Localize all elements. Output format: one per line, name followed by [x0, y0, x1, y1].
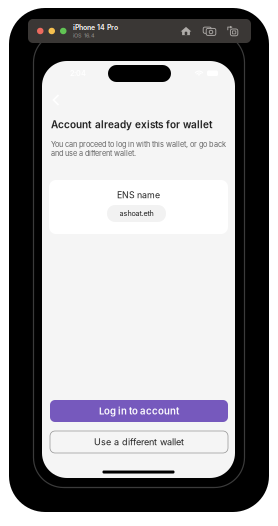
staticText: ashoat.eth [119, 209, 153, 218]
button[interactable]: Log in to account [50, 400, 228, 422]
staticText: Use a different wallet [94, 436, 184, 447]
staticText: Log in to account [99, 405, 179, 417]
staticText: Account already exists for wallet [51, 118, 213, 131]
button[interactable]: Use a different wallet [50, 431, 228, 453]
button[interactable]: Home [179, 21, 192, 41]
staticText: ENS name [117, 190, 160, 200]
staticText: 2:04 [70, 69, 86, 78]
staticText: iOS 16.4 [73, 32, 95, 39]
staticText: iPhone 14 Pro [73, 23, 118, 32]
button[interactable]: Screenshot [203, 21, 216, 41]
staticText: You can proceed to log in with this wall… [51, 140, 226, 158]
button[interactable]: Record screen [226, 21, 239, 41]
